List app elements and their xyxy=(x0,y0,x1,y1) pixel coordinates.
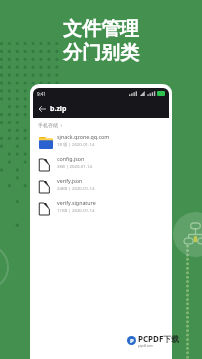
button[interactable]: verify.json xyxy=(33,176,169,198)
staticText: 34KB | 2020-01-14 xyxy=(57,185,95,191)
staticText: sjnack.qzone.qq.com xyxy=(57,133,110,140)
button[interactable]: verify.signature xyxy=(33,198,169,220)
button[interactable]: sjnack.qzone.qq.com xyxy=(33,132,169,154)
staticText: 手机存储 › xyxy=(38,122,63,129)
staticText: 文件管理 xyxy=(63,17,139,41)
button[interactable]: Back xyxy=(37,104,47,114)
staticText: 分门别类 xyxy=(63,41,139,65)
staticText: 18 项 | 2020-01-14 xyxy=(57,141,95,147)
button[interactable]: config.json xyxy=(33,154,169,176)
staticText: b.zip xyxy=(50,104,67,114)
staticText: 9:41 xyxy=(37,91,46,97)
staticText: config.json xyxy=(57,155,85,162)
staticText: pcpdf.com xyxy=(138,344,153,348)
button[interactable]: Categories xyxy=(173,212,202,257)
staticText: verify.signature xyxy=(57,199,96,206)
staticText: 11KB | 2020-01-14 xyxy=(57,207,95,213)
staticText: P xyxy=(130,337,134,345)
staticText: 3KB | 2020-01-14 xyxy=(57,163,92,169)
staticText: verify.json xyxy=(57,177,83,184)
staticText: PCPDF下载 xyxy=(138,333,180,344)
